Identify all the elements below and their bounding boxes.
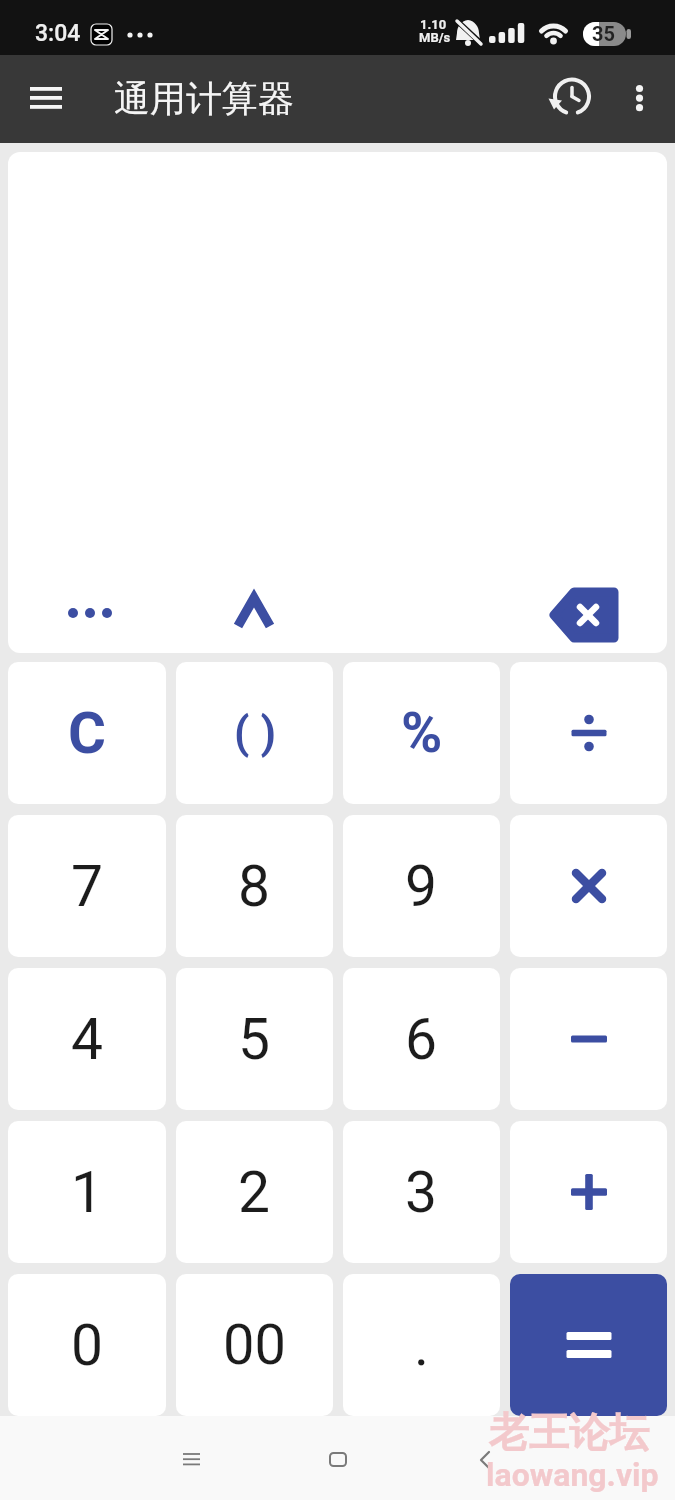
staticText: 1	[71, 1159, 104, 1226]
button[interactable]: 9	[343, 815, 500, 957]
button[interactable]: 0	[8, 1274, 166, 1416]
button[interactable]: C	[8, 662, 166, 804]
button[interactable]: 3	[343, 1121, 500, 1263]
button[interactable]: 00	[176, 1274, 333, 1416]
button[interactable]: 4	[8, 968, 166, 1110]
staticText: MB/s	[419, 30, 451, 45]
button[interactable]: ( )	[176, 662, 333, 804]
button[interactable]	[510, 968, 667, 1110]
staticText: 8	[238, 853, 271, 920]
button[interactable]	[548, 582, 634, 642]
button[interactable]	[510, 1274, 667, 1416]
staticText: 3	[405, 1159, 438, 1226]
button[interactable]	[20, 73, 72, 125]
staticText: 9	[405, 853, 438, 920]
button[interactable]	[452, 1436, 516, 1484]
button[interactable]: 2	[176, 1121, 333, 1263]
staticText: laowang.vip	[486, 1456, 659, 1494]
staticText: 4	[71, 1006, 104, 1073]
staticText: 0	[71, 1312, 104, 1379]
button[interactable]	[616, 71, 662, 117]
staticText: 1.10	[420, 17, 447, 32]
staticText: 35	[592, 22, 615, 45]
button[interactable]	[58, 585, 128, 641]
button[interactable]: .	[343, 1274, 500, 1416]
staticText: 通用计算器	[114, 76, 294, 121]
staticText: 6	[405, 1006, 438, 1073]
button[interactable]: 1	[8, 1121, 166, 1263]
staticText: .	[414, 1312, 430, 1379]
button[interactable]	[306, 1436, 370, 1484]
staticText: ( )	[234, 707, 276, 759]
staticText: 2	[238, 1159, 271, 1226]
button[interactable]	[510, 1121, 667, 1263]
button[interactable]	[544, 71, 600, 127]
staticText: 00	[223, 1312, 286, 1378]
staticText: %	[401, 700, 443, 766]
staticText: 7	[71, 853, 104, 920]
button[interactable]	[219, 585, 289, 641]
button[interactable]	[510, 662, 667, 804]
button[interactable]: 5	[176, 968, 333, 1110]
staticText: 3:04	[35, 20, 81, 47]
staticText: 老王论坛	[489, 1407, 649, 1457]
staticText: 5	[238, 1006, 271, 1073]
staticText: C	[68, 699, 106, 767]
button[interactable]: %	[343, 662, 500, 804]
button[interactable]: 6	[343, 968, 500, 1110]
button[interactable]: 8	[176, 815, 333, 957]
button[interactable]	[510, 815, 667, 957]
button[interactable]: 7	[8, 815, 166, 957]
button[interactable]	[160, 1436, 224, 1484]
